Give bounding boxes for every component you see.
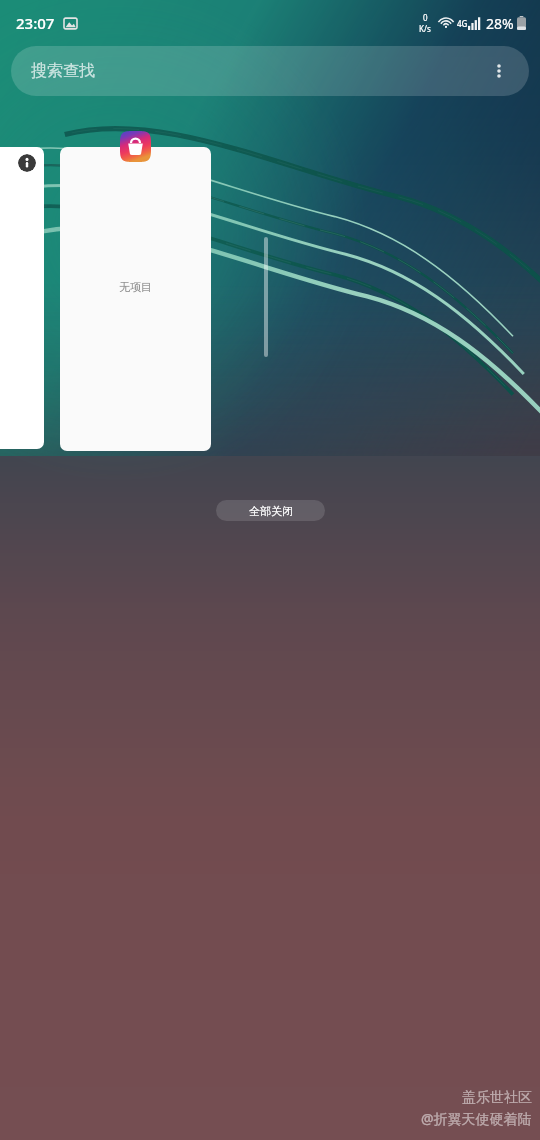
staticText: @折翼天使硬着陆 bbox=[421, 1109, 532, 1128]
button[interactable]: App info bbox=[0, 147, 44, 449]
staticText: 无项目 bbox=[119, 280, 152, 294]
staticText: K/s bbox=[419, 23, 431, 34]
button[interactable]: 搜索查找 bbox=[11, 46, 529, 96]
staticText: 全部关闭 bbox=[249, 504, 293, 518]
staticText: 盖乐世社区 bbox=[462, 1089, 532, 1107]
button[interactable]: 全部关闭 bbox=[216, 500, 325, 521]
button[interactable]: 无项目 bbox=[60, 147, 211, 451]
staticText: 4G bbox=[457, 18, 468, 29]
button[interactable]: Galaxy Store bbox=[120, 131, 151, 162]
button[interactable]: More options bbox=[479, 51, 519, 91]
staticText: 0 bbox=[423, 12, 428, 23]
staticText: 搜索查找 bbox=[31, 61, 95, 81]
staticText: 28% bbox=[486, 14, 514, 33]
staticText: 23:07 bbox=[16, 13, 55, 33]
button[interactable]: App info bbox=[18, 154, 36, 172]
